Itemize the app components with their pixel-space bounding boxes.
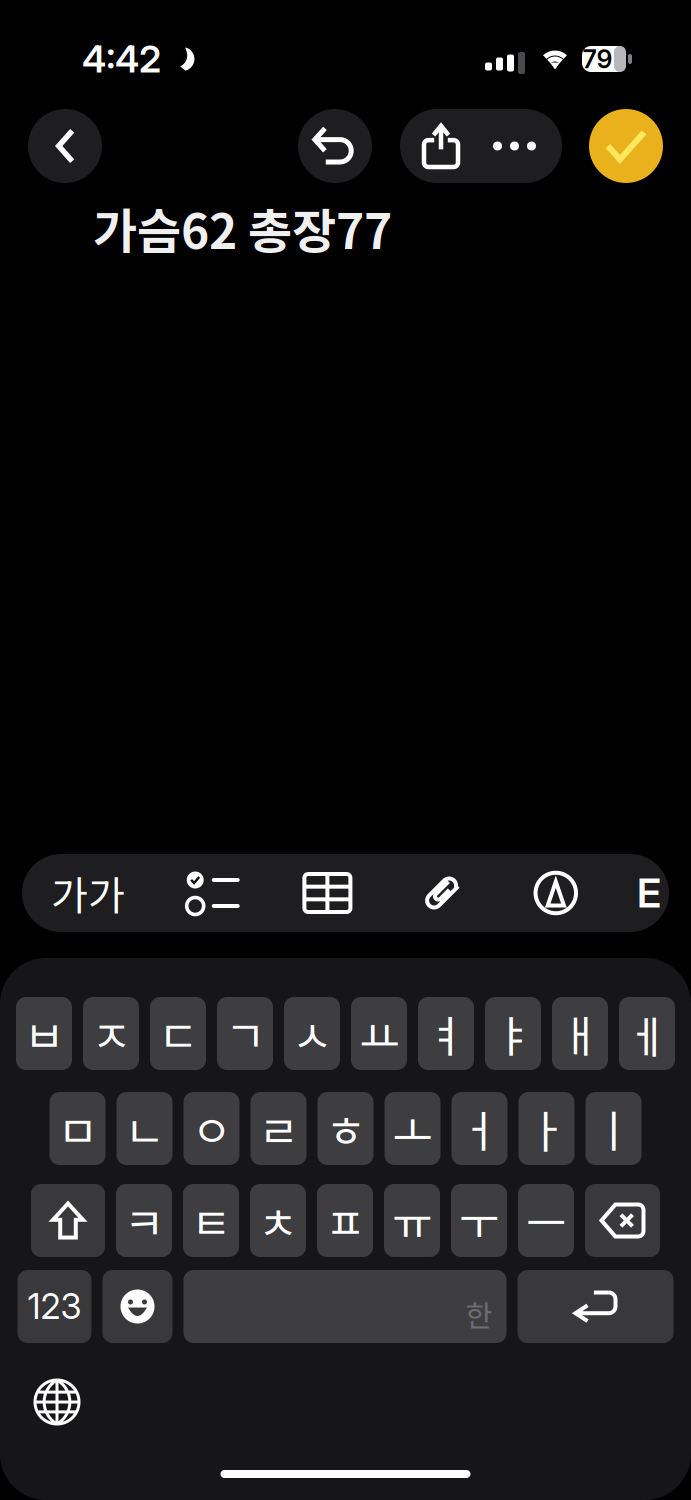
staticText: ㅋ [124,1189,164,1252]
staticText: ㄷ [158,1002,198,1065]
button[interactable]: Back [28,109,102,183]
button[interactable]: ㅛ [351,997,407,1070]
button[interactable]: 123 [17,1270,91,1343]
staticText: E [637,869,661,917]
staticText: ㅌ [191,1189,231,1252]
staticText: 4:42 [82,36,161,82]
staticText: ㅑ [493,1002,533,1065]
staticText: ㅊ [258,1189,298,1252]
button[interactable]: ㄱ [217,997,273,1070]
staticText: ㄹ [258,1097,298,1160]
button[interactable]: ㅌ [183,1184,239,1257]
button[interactable]: ㅓ [451,1092,507,1165]
button[interactable]: Undo [298,109,372,183]
staticText: ㄱ [225,1002,265,1065]
staticText: ㅏ [526,1097,566,1160]
staticText: ㅜ [459,1189,499,1252]
button[interactable]: ㅡ [518,1184,574,1257]
staticText: ㅅ [292,1002,332,1065]
button[interactable]: ㅎ [317,1092,373,1165]
button[interactable]: ㅠ [384,1184,440,1257]
staticText: 123 [27,1285,81,1327]
staticText: 79 [582,44,612,74]
button[interactable]: 한 [183,1270,506,1343]
button[interactable]: ㅅ [284,997,340,1070]
staticText: ㄴ [124,1097,164,1160]
staticText: ㅡ [526,1189,566,1252]
staticText: ㅕ [426,1002,466,1065]
button[interactable]: ㅈ [83,997,139,1070]
button[interactable]: ㅕ [418,997,474,1070]
staticText: ㅍ [325,1189,365,1252]
button[interactable]: Done [589,109,663,183]
button[interactable]: Markup [523,858,589,928]
button[interactable]: ㄷ [150,997,206,1070]
button[interactable] [585,1184,660,1257]
staticText: ㅈ [91,1002,131,1065]
staticText: 가슴62 총장77 [93,193,392,263]
button[interactable]: Table [294,858,360,928]
button[interactable]: ㅑ [485,997,541,1070]
button[interactable]: Switch keyboard [24,1369,90,1435]
staticText: ㅠ [392,1189,432,1252]
staticText: ㅔ [627,1002,667,1065]
button[interactable]: ㅁ [49,1092,105,1165]
staticText: 가가 [51,864,125,922]
button[interactable]: ㅔ [619,997,675,1070]
button[interactable]: ㅣ [585,1092,641,1165]
staticText: ㅓ [459,1097,499,1160]
button[interactable] [400,109,562,183]
staticText: ㅂ [24,1002,64,1065]
button[interactable]: ㅂ [16,997,72,1070]
button[interactable]: ㅊ [250,1184,306,1257]
button[interactable]: ㅍ [317,1184,373,1257]
staticText: ㅣ [593,1097,633,1160]
button[interactable]: ㅋ [116,1184,172,1257]
staticText: ㅎ [325,1097,365,1160]
staticText: ㅁ [57,1097,97,1160]
button[interactable]: Checklist [180,858,246,928]
button[interactable]: 가가 [44,858,132,928]
button[interactable]: ㅏ [518,1092,574,1165]
button[interactable]: Attach [409,858,475,928]
staticText: ㅛ [359,1002,399,1065]
staticText: ㅗ [392,1097,432,1160]
button[interactable]: ㅗ [384,1092,440,1165]
button[interactable] [517,1270,673,1343]
button[interactable]: ㅇ [183,1092,239,1165]
button[interactable] [31,1184,105,1257]
button[interactable] [102,1270,172,1343]
staticText: 한 [465,1292,492,1335]
button[interactable]: ㅐ [552,997,608,1070]
staticText: ㅇ [191,1097,231,1160]
button[interactable]: ㅜ [451,1184,507,1257]
button[interactable]: ㄴ [116,1092,172,1165]
staticText: ㅐ [560,1002,600,1065]
button[interactable]: ㄹ [250,1092,306,1165]
